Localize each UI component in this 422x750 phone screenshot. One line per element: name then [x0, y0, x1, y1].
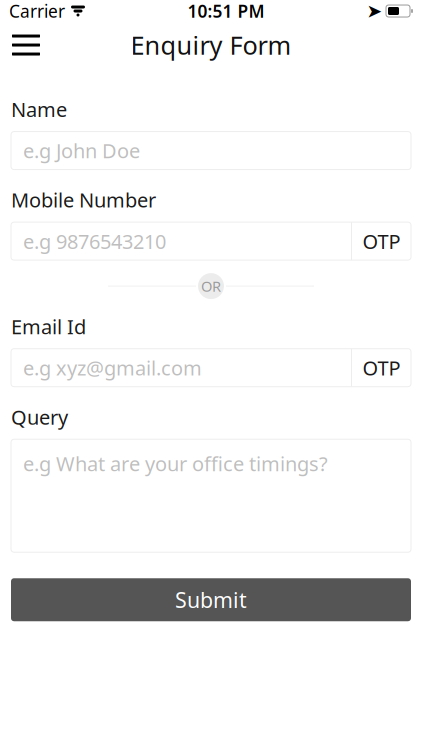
staticText: OTP	[362, 228, 400, 254]
staticText: Mobile Number	[11, 187, 156, 213]
button[interactable]: OTP	[352, 349, 411, 387]
staticText: e.g What are your office timings?	[23, 450, 328, 477]
button[interactable]: Submit	[11, 578, 411, 621]
staticText: ➤	[366, 0, 382, 22]
staticText: Enquiry Form	[130, 28, 291, 62]
staticText: OR	[201, 276, 221, 296]
staticText: e.g xyz@gmail.com	[23, 354, 202, 381]
staticText: Carrier	[9, 0, 65, 22]
staticText: Name	[11, 96, 67, 123]
staticText: e.g 9876543210	[23, 228, 166, 254]
staticText: Query	[11, 404, 68, 430]
staticText: e.g John Doe	[23, 137, 140, 164]
staticText: Email Id	[11, 313, 86, 340]
staticText: 10:51 PM	[187, 0, 264, 22]
button[interactable]: Menu	[4, 23, 48, 67]
button[interactable]: OTP	[352, 222, 411, 260]
staticText: Submit	[175, 586, 247, 614]
staticText: OTP	[362, 354, 400, 381]
